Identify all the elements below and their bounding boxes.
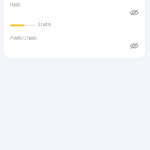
- button[interactable]: Pokaż hasło: [127, 7, 141, 19]
- staticText: Powtórz hasło: [10, 36, 37, 41]
- button[interactable]: Pokaż powtórzone hasło: [127, 40, 141, 52]
- staticText: Średni: [38, 22, 51, 27]
- staticText: Hasło: [10, 2, 21, 7]
